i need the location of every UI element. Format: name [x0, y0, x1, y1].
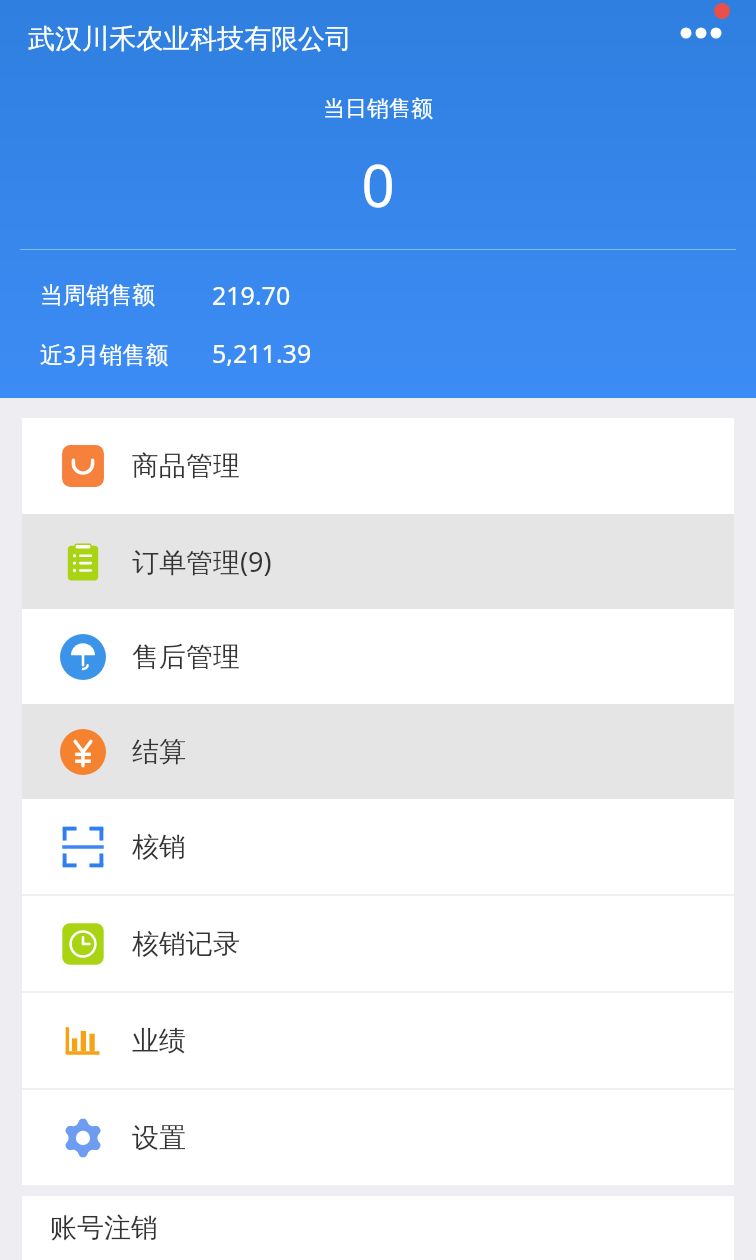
staticText: 0 — [0, 145, 756, 224]
button[interactable]: 售后管理 — [22, 609, 734, 704]
staticText: 账号注销 — [50, 1211, 158, 1245]
staticText: 近3月销售额 — [40, 338, 169, 369]
staticText: 5,211.39 — [212, 336, 312, 370]
button[interactable]: 设置 — [22, 1090, 734, 1185]
staticText: 售后管理 — [132, 640, 240, 674]
button[interactable]: 商品管理 — [22, 418, 734, 514]
button[interactable]: 核销记录 — [22, 896, 734, 991]
staticText: 设置 — [132, 1121, 186, 1155]
staticText: 商品管理 — [132, 449, 240, 483]
staticText: 核销 — [132, 830, 186, 864]
staticText: 业绩 — [132, 1024, 186, 1058]
staticText: 结算 — [132, 735, 186, 769]
button[interactable]: 业绩 — [22, 993, 734, 1088]
button[interactable]: 结算 — [22, 704, 734, 799]
staticText: 订单管理(9) — [132, 543, 272, 580]
staticText: 当周销售额 — [40, 281, 155, 310]
staticText: 当日销售额 — [0, 95, 756, 123]
button[interactable]: 核销 — [22, 799, 734, 894]
staticText: 核销记录 — [132, 927, 240, 961]
button[interactable]: 账号注销 — [22, 1196, 734, 1260]
button[interactable]: 订单管理(9) — [22, 514, 734, 609]
staticText: 武汉川禾农业科技有限公司 — [28, 22, 352, 56]
staticText: 219.70 — [212, 278, 291, 312]
button[interactable]: More options — [652, 0, 738, 60]
